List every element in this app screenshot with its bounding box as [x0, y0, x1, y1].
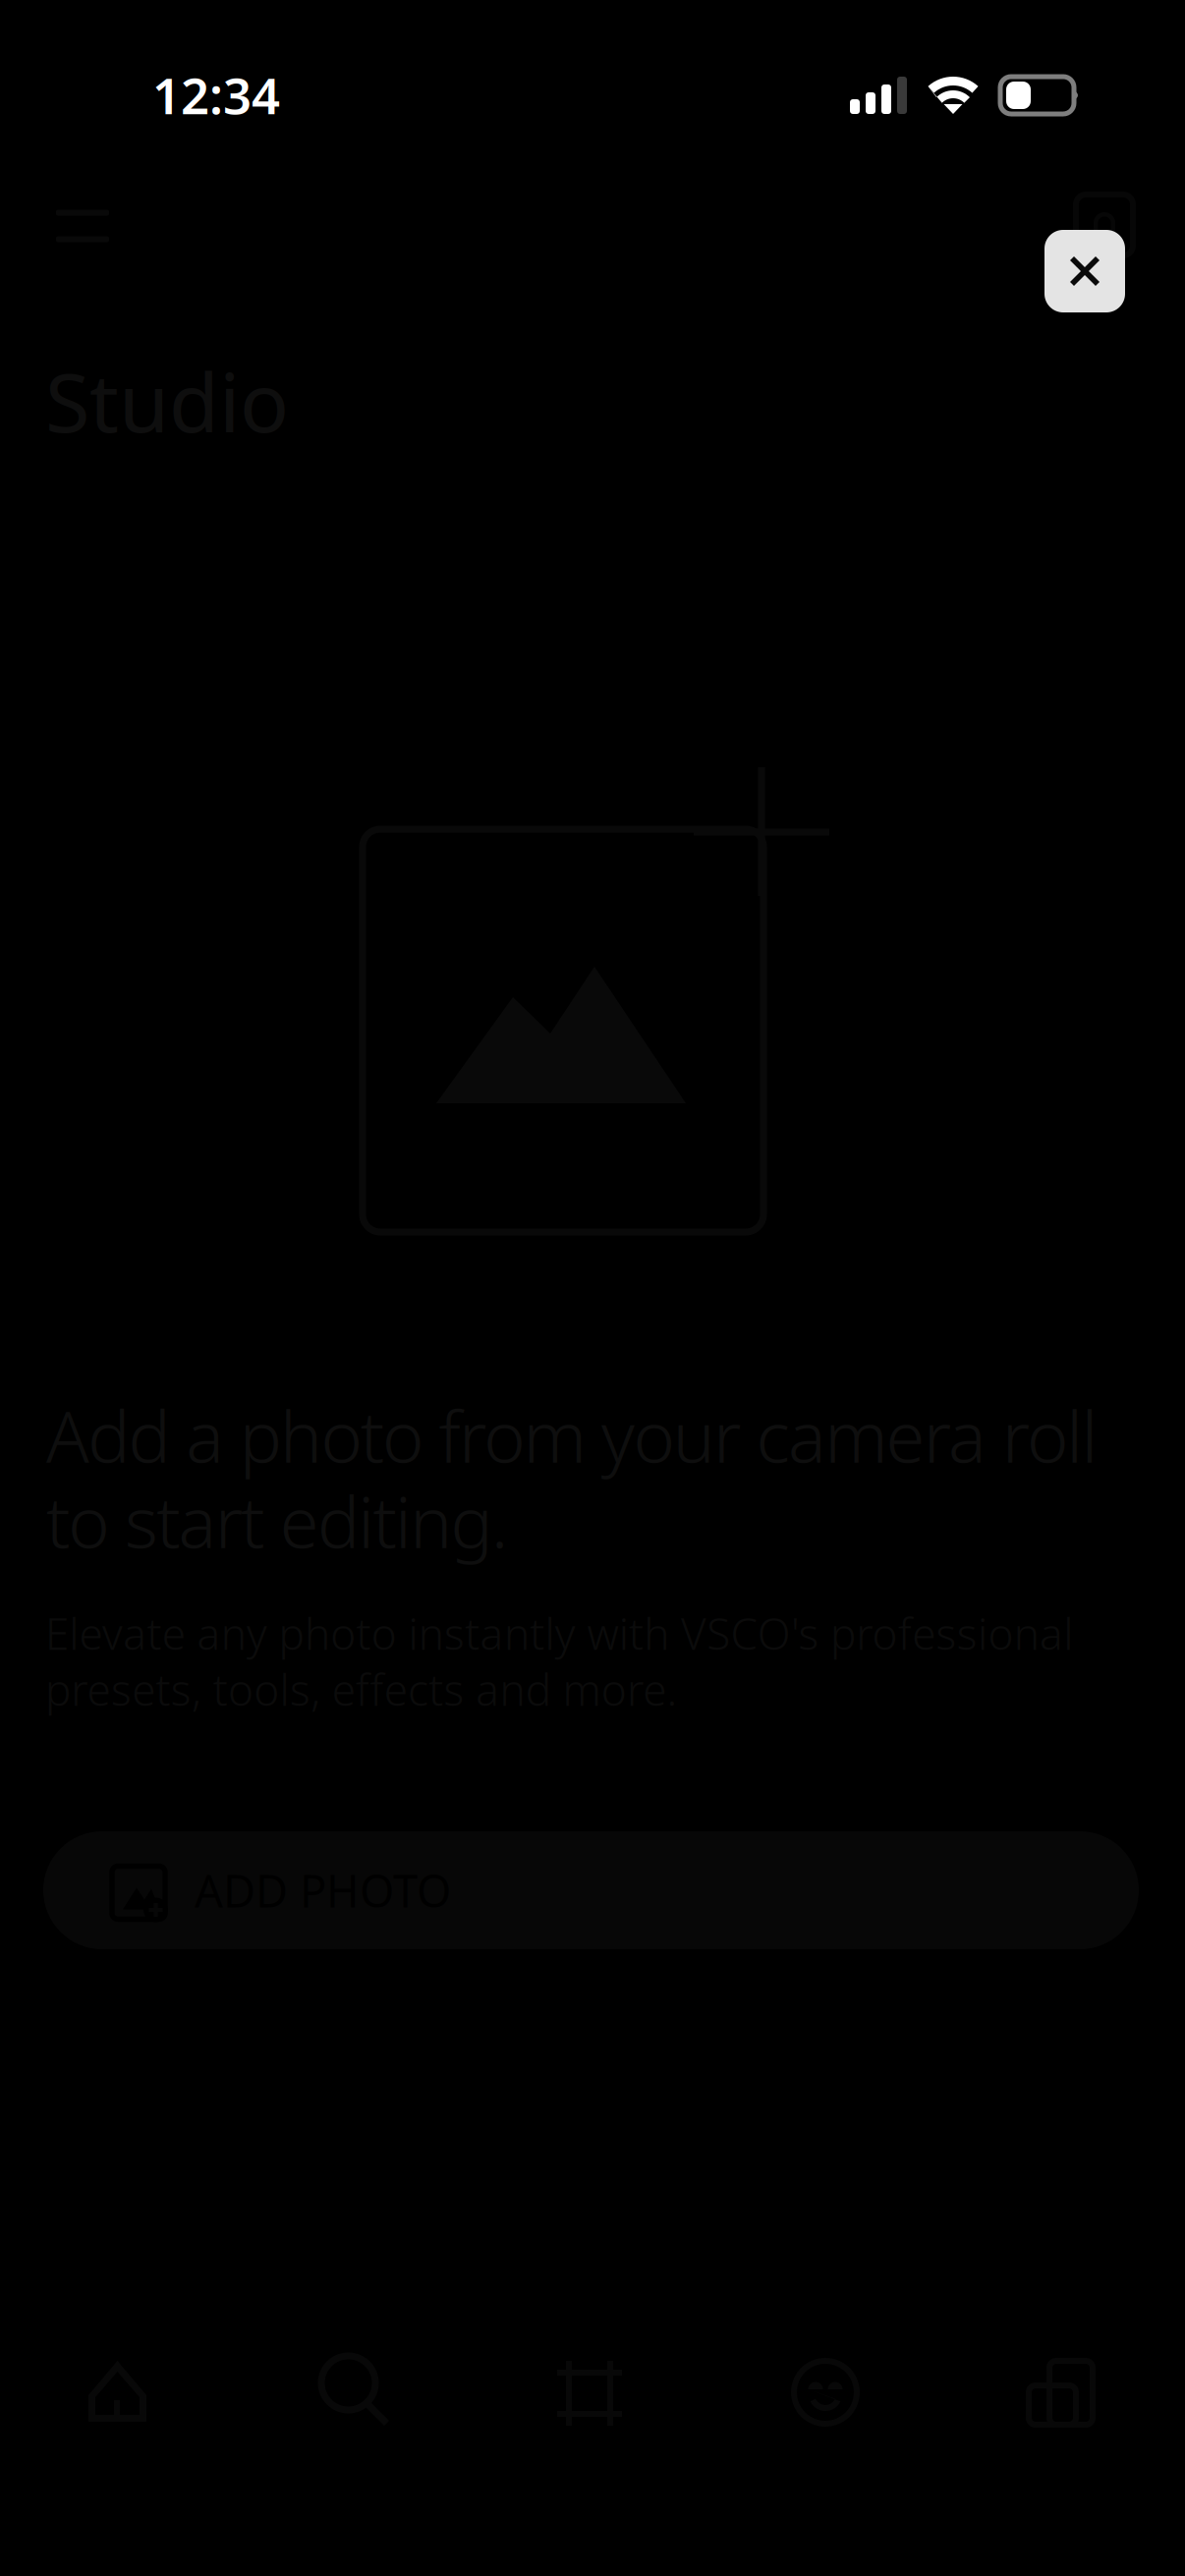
button[interactable]: Home	[88, 2361, 146, 2422]
button[interactable]: Search	[321, 2356, 389, 2426]
staticText: Elevate any photo instantly with VSCO's …	[45, 1604, 1073, 1662]
button[interactable]: Profile	[794, 2361, 857, 2424]
button[interactable]: Studio	[557, 2361, 622, 2426]
staticText: to start editing.	[46, 1474, 509, 1568]
button[interactable]: Close	[1044, 230, 1125, 312]
button[interactable]: Spaces	[1029, 2361, 1093, 2425]
staticText: Studio	[45, 347, 289, 455]
staticText: 12:34	[152, 62, 280, 128]
staticText: Add a photo from your camera roll	[46, 1388, 1098, 1482]
